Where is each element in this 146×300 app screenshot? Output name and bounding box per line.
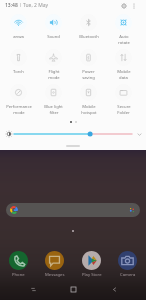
button[interactable]: Camera: [110, 251, 145, 278]
button[interactable]: anwa: [1, 10, 36, 45]
button[interactable]: Settings: [119, 1, 128, 10]
button[interactable]: Bluetooth: [71, 10, 106, 45]
button[interactable]: [6, 203, 140, 217]
button[interactable]: Torch: [1, 45, 36, 80]
staticText: Blue light: [44, 104, 63, 110]
button[interactable]: Secure: [106, 80, 141, 115]
staticText: Performance: [6, 104, 32, 110]
button[interactable]: Phone: [1, 251, 36, 278]
button[interactable]: Messages: [37, 251, 72, 278]
button[interactable]: Sound: [36, 10, 71, 45]
staticText: data: [119, 75, 128, 80]
staticText: Camera: [120, 272, 136, 278]
staticText: Folder: [117, 110, 130, 115]
button[interactable]: Expand panel: [135, 130, 143, 138]
button[interactable]: Power: [71, 45, 106, 80]
staticText: 13:48: [5, 2, 18, 9]
staticText: Bluetooth: [79, 34, 99, 40]
staticText: Secure: [117, 104, 131, 110]
button[interactable]: Mobile: [71, 80, 106, 115]
button[interactable]: Performance: [1, 80, 36, 115]
staticText: saving: [82, 75, 95, 80]
staticText: Sound: [47, 34, 60, 40]
button[interactable]: More options: [129, 1, 138, 10]
staticText: Power: [82, 69, 95, 75]
staticText: filter: [49, 110, 59, 115]
button[interactable]: Mobile: [106, 45, 141, 80]
staticText: Play Store: [82, 272, 102, 278]
button[interactable]: Home: [65, 281, 81, 297]
button[interactable]: Back: [106, 281, 122, 297]
staticText: Auto: [119, 34, 129, 40]
staticText: Tue, 2 May: [23, 2, 49, 9]
staticText: Phone: [12, 272, 25, 278]
staticText: Flight: [48, 69, 60, 75]
button[interactable]: Auto: [106, 10, 141, 45]
staticText: Messages: [45, 272, 65, 278]
staticText: Torch: [13, 69, 24, 75]
staticText: anwa: [13, 34, 24, 40]
button[interactable]: Play Store: [74, 251, 109, 278]
button[interactable]: Flight: [36, 45, 71, 80]
staticText: Mobile: [117, 69, 131, 75]
button[interactable]: Blue light: [36, 80, 71, 115]
staticText: mode: [13, 110, 25, 115]
staticText: Mobile: [82, 104, 96, 110]
staticText: rotate: [118, 40, 130, 45]
button[interactable]: Recents: [25, 281, 41, 297]
staticText: hotspot: [81, 110, 97, 115]
staticText: mode: [48, 75, 60, 80]
